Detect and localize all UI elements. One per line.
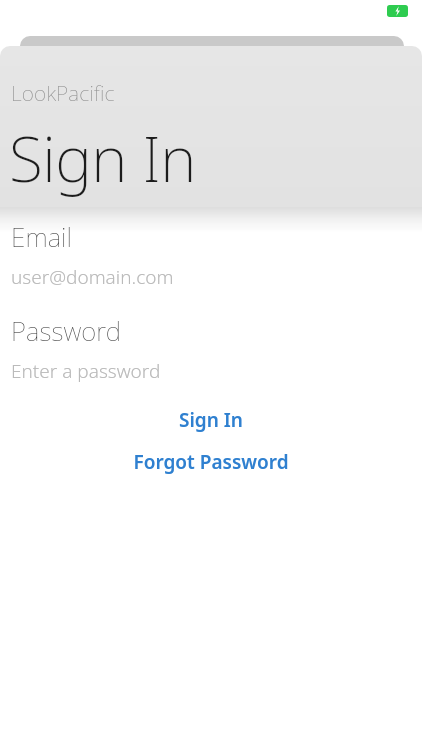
staticText: Password xyxy=(11,313,422,348)
button[interactable]: Sign In xyxy=(0,405,422,435)
staticText: Email xyxy=(11,219,422,254)
staticText: Sign In xyxy=(179,407,243,433)
staticText: user@domain.com xyxy=(11,264,174,290)
button[interactable]: Forgot Password xyxy=(0,447,422,477)
staticText: Sign In xyxy=(9,116,196,200)
button[interactable]: Email input xyxy=(0,262,422,292)
staticText: LookPacific xyxy=(11,79,115,108)
other: Battery charging xyxy=(387,5,408,17)
staticText: Forgot Password xyxy=(133,449,289,475)
button[interactable]: Password input xyxy=(0,356,422,386)
staticText: Enter a password xyxy=(11,358,161,384)
